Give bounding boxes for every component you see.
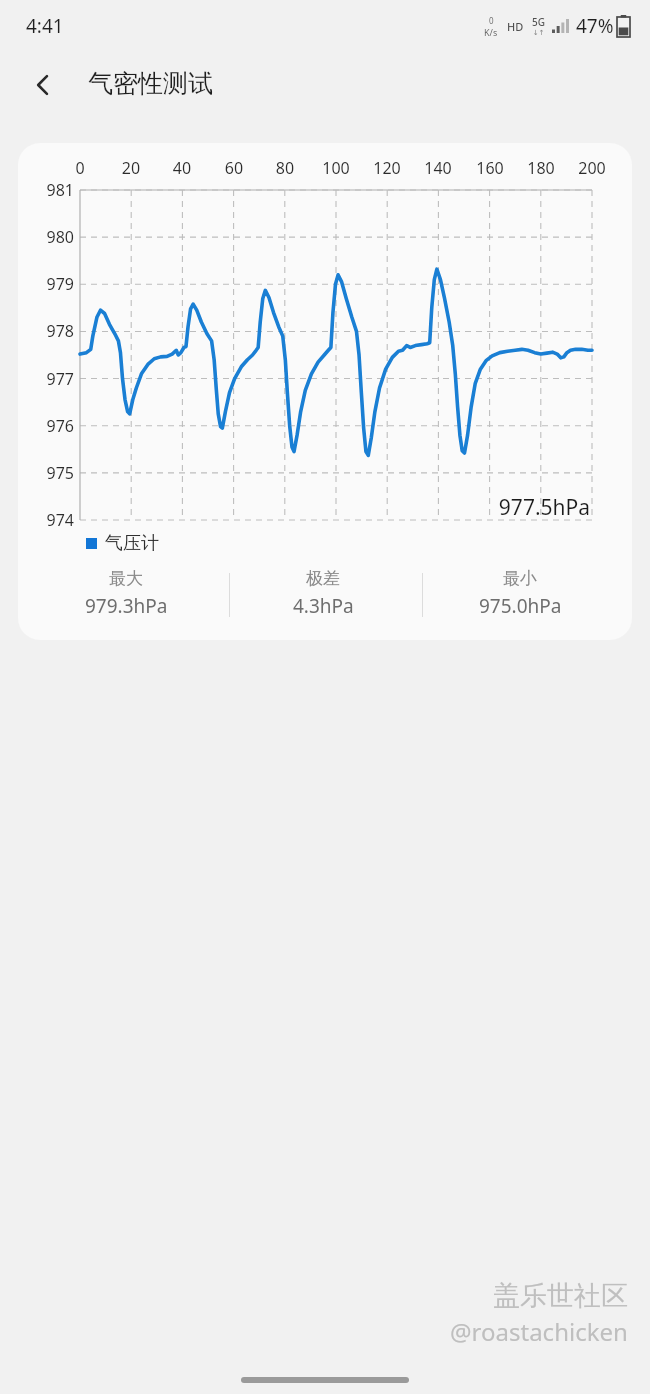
staticText: 60 <box>212 157 256 179</box>
button[interactable]: Back <box>18 60 68 110</box>
staticText: K/s <box>484 26 498 38</box>
staticText: 120 <box>365 157 409 179</box>
staticText: 974 <box>32 509 74 531</box>
staticText: 979 <box>32 273 74 295</box>
staticText: 最大 <box>109 568 143 589</box>
staticText: 977.5hPa <box>476 493 590 522</box>
staticText: 极差 <box>306 568 340 589</box>
staticText: 980 <box>32 226 74 248</box>
staticText: 200 <box>570 157 614 179</box>
staticText: 0 <box>58 157 102 179</box>
staticText: 977 <box>32 368 74 390</box>
staticText: 140 <box>416 157 460 179</box>
staticText: 976 <box>32 415 74 437</box>
staticText: 20 <box>109 157 153 179</box>
staticText: 180 <box>519 157 563 179</box>
staticText: 4:41 <box>26 13 64 39</box>
staticText: 盖乐世社区 <box>493 1279 628 1313</box>
staticText: 80 <box>263 157 307 179</box>
staticText: 气密性测试 <box>88 68 213 99</box>
staticText: 气压计 <box>105 532 159 555</box>
staticText: 975 <box>32 462 74 484</box>
staticText: 5G <box>532 15 545 29</box>
staticText: 975.0hPa <box>479 593 562 619</box>
staticText: 979.3hPa <box>85 593 168 619</box>
staticText: 100 <box>314 157 358 179</box>
staticText: 最小 <box>503 568 537 589</box>
staticText: HD <box>507 19 524 34</box>
staticText: 978 <box>32 320 74 342</box>
staticText: ↓↑ <box>533 29 545 37</box>
staticText: 160 <box>468 157 512 179</box>
staticText: 4.3hPa <box>293 593 354 619</box>
staticText: 981 <box>32 179 74 201</box>
staticText: @roastachicken <box>450 1315 628 1348</box>
staticText: 47% <box>576 13 614 39</box>
staticText: 0 <box>489 15 494 26</box>
staticText: 40 <box>160 157 204 179</box>
